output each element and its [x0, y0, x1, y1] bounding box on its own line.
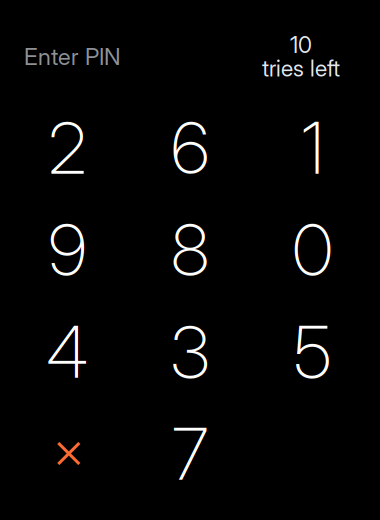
- staticText: 3: [170, 309, 209, 395]
- button[interactable]: 8: [129, 199, 251, 301]
- button[interactable]: 4: [6, 301, 129, 403]
- staticText: 2: [48, 105, 86, 191]
- staticText: 7: [172, 411, 208, 497]
- staticText: 0: [292, 207, 333, 293]
- staticText: tries left: [262, 54, 340, 82]
- button[interactable]: 7: [129, 403, 251, 505]
- staticText: 6: [171, 105, 209, 191]
- staticText: 5: [294, 309, 332, 395]
- button[interactable]: 3: [129, 301, 251, 403]
- button[interactable]: 2: [6, 97, 129, 199]
- staticText: 8: [171, 207, 209, 293]
- button[interactable]: 1: [251, 97, 374, 199]
- button[interactable]: 6: [129, 97, 251, 199]
- button[interactable]: 9: [6, 199, 129, 301]
- staticText: 10: [290, 31, 312, 58]
- staticText: 1: [301, 105, 324, 191]
- staticText: 4: [46, 309, 88, 395]
- staticText: 9: [48, 207, 86, 293]
- button[interactable]: 5: [251, 301, 374, 403]
- button[interactable]: Cancel: [6, 403, 129, 505]
- button[interactable]: 0: [251, 199, 374, 301]
- staticText: Enter PIN: [24, 42, 121, 70]
